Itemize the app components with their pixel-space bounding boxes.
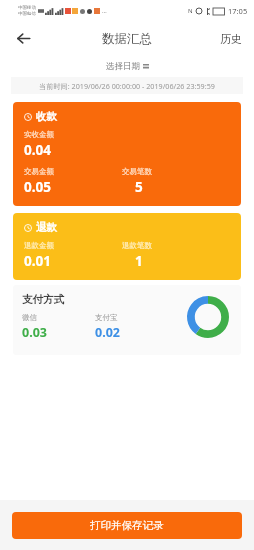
staticText: 交易笔数	[122, 167, 152, 176]
staticText: 0.02	[95, 324, 120, 341]
staticText: 数据汇总	[102, 31, 152, 47]
staticText: 收款	[36, 110, 57, 123]
staticText: 1	[135, 252, 143, 270]
staticText: 微信	[22, 313, 37, 322]
button[interactable]: 支付方式	[13, 285, 241, 355]
button[interactable]: 收款	[13, 102, 241, 206]
staticText: 17:05	[228, 6, 248, 16]
button[interactable]: Back	[6, 22, 40, 55]
staticText: 0.01	[24, 252, 51, 270]
button[interactable]: 选择日期	[98, 58, 157, 75]
staticText: 当前时间: 2019/06/26 00:00:00 - 2019/06/26 2…	[39, 81, 215, 91]
staticText: 0.04	[24, 141, 51, 159]
staticText: …	[102, 7, 107, 15]
staticText: 打印并保存记录	[90, 519, 164, 532]
staticText: 中国移动	[18, 5, 36, 11]
staticText: 0.05	[24, 178, 51, 196]
button[interactable]: 打印并保存记录	[12, 512, 242, 539]
staticText: 选择日期	[106, 61, 140, 72]
staticText: 中国电信	[18, 11, 36, 17]
staticText: 历史	[220, 32, 242, 46]
staticText: 退款笔数	[122, 241, 152, 250]
staticText: 支付宝	[95, 313, 118, 322]
button[interactable]: 退款	[13, 213, 241, 280]
staticText: 退款金额	[24, 241, 54, 250]
staticText: 5	[135, 178, 143, 196]
staticText: 退款	[36, 221, 57, 234]
staticText: 0.03	[22, 324, 47, 341]
staticText: 交易金额	[24, 167, 54, 176]
staticText: N	[188, 7, 193, 15]
staticText: 实收金额	[24, 130, 54, 139]
staticText: 支付方式	[22, 293, 64, 306]
button[interactable]: 历史	[208, 26, 254, 52]
